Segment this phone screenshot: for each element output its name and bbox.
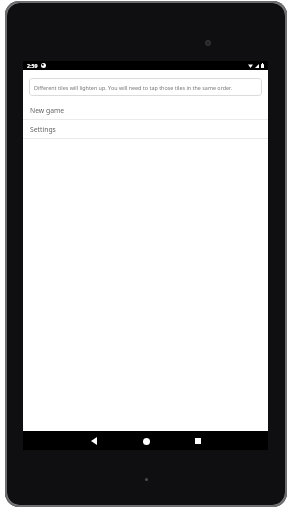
button[interactable] (191, 434, 205, 448)
button[interactable]: Settings (23, 120, 268, 139)
button[interactable] (139, 434, 153, 448)
button[interactable]: New game (23, 101, 268, 120)
staticText: Different tiles will lighten up. You wil… (34, 84, 232, 91)
button[interactable] (87, 434, 101, 448)
staticText: Settings (30, 125, 56, 134)
staticText: New game (30, 106, 65, 115)
staticText: 2:59 (27, 62, 38, 69)
